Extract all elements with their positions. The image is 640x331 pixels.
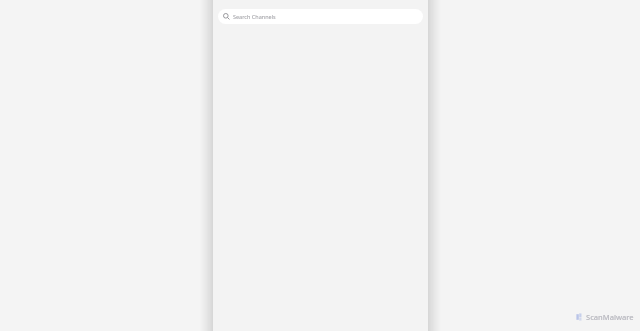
button[interactable]: Search <box>218 9 423 24</box>
staticText: ScanMalware <box>586 312 634 322</box>
other: Search <box>223 13 230 20</box>
staticText: Search Channels <box>233 13 276 20</box>
